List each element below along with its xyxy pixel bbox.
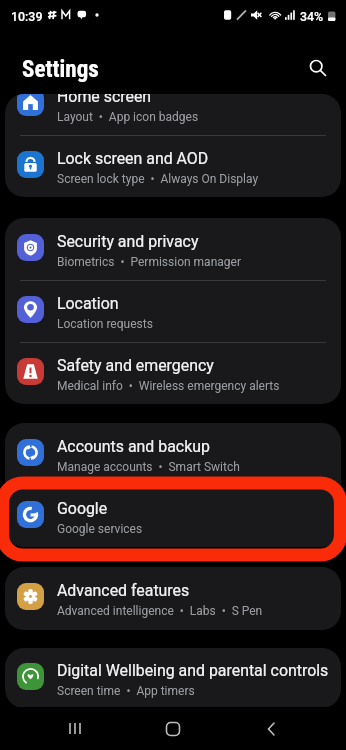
button[interactable]: Security and privacy <box>5 218 341 280</box>
staticText: Google services <box>57 522 143 536</box>
staticText: 10:39 <box>11 9 43 24</box>
staticText: Lock screen and AOD <box>57 149 209 168</box>
staticText: Safety and emergency <box>57 356 214 375</box>
staticText: Home screen <box>57 94 152 106</box>
staticText: Screen lock type • Always On Display <box>57 172 259 186</box>
button[interactable]: Recent apps <box>51 707 99 750</box>
staticText: Medical info • Wireless emergency alerts <box>57 379 280 393</box>
staticText: Location <box>57 294 119 313</box>
button[interactable]: Location <box>5 280 341 342</box>
button[interactable]: Home <box>149 707 197 750</box>
staticText: Advanced intelligence • Labs • S Pen <box>57 604 263 618</box>
staticText: Digital Wellbeing and parental controls <box>57 661 329 680</box>
button[interactable]: Home screen <box>5 94 341 135</box>
staticText: Accounts and backup <box>57 437 210 456</box>
button[interactable]: Google <box>5 485 341 547</box>
staticText: Biometrics • Permission manager <box>57 255 241 269</box>
button[interactable]: Advanced features <box>5 567 341 629</box>
staticText: Screen time • App timers <box>57 684 195 698</box>
staticText: Google <box>57 499 108 518</box>
staticText: Manage accounts • Smart Switch <box>57 460 240 474</box>
staticText: 34% <box>300 9 324 24</box>
button[interactable]: Safety and emergency <box>5 342 341 404</box>
button[interactable]: Lock screen and AOD <box>5 135 341 197</box>
button[interactable]: Search <box>300 50 332 82</box>
staticText: Layout • App icon badges <box>57 110 199 124</box>
button[interactable]: Back <box>248 707 296 750</box>
button[interactable]: Digital Wellbeing and parental controls <box>5 648 341 707</box>
button[interactable]: Accounts and backup <box>5 423 341 485</box>
staticText: Advanced features <box>57 581 190 600</box>
staticText: Settings <box>22 56 99 83</box>
staticText: Security and privacy <box>57 232 199 251</box>
staticText: Location requests <box>57 317 153 331</box>
